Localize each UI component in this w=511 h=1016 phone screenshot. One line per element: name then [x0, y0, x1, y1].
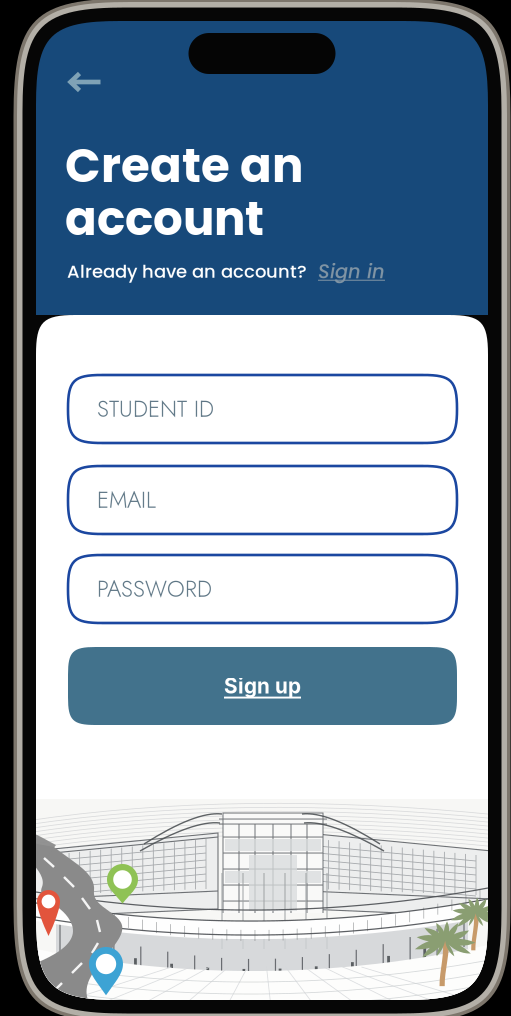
staticText: STUDENT ID [97, 393, 214, 425]
staticText: EMAIL [97, 484, 156, 516]
staticText: Sign up [224, 673, 301, 698]
button[interactable]: Back [57, 61, 114, 103]
staticText: PASSWORD [97, 573, 212, 605]
staticText: Sign in [318, 258, 385, 285]
staticText: Already have an account? [67, 259, 307, 284]
staticText: Create an [65, 133, 303, 198]
staticText: account [65, 186, 264, 251]
button[interactable]: Sign in [307, 258, 385, 285]
button[interactable]: Sign up [68, 647, 457, 725]
